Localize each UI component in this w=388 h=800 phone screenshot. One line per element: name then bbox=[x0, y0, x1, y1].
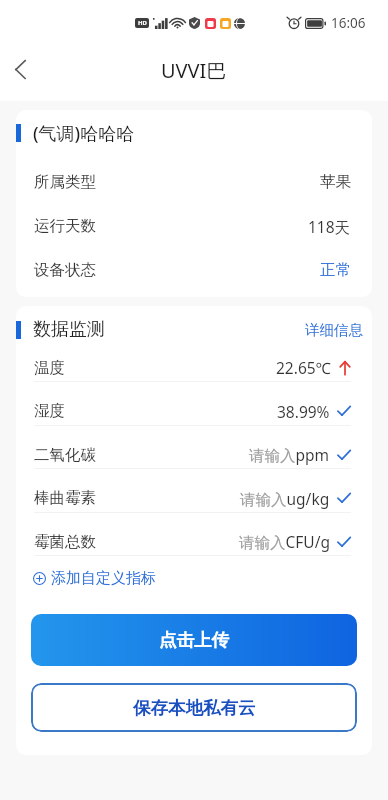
staticText: HD bbox=[138, 19, 147, 27]
staticText: 正常 bbox=[320, 260, 351, 280]
staticText: 详细信息 bbox=[305, 321, 363, 339]
staticText: 118天 bbox=[308, 216, 351, 237]
button[interactable]: 添加自定义指标 bbox=[16, 556, 372, 601]
staticText: 22.65℃ bbox=[276, 357, 332, 378]
staticText: UVVI巴 bbox=[161, 57, 227, 84]
staticText: 请输入ppm bbox=[249, 444, 330, 465]
staticText: 点击上传 bbox=[159, 629, 229, 651]
staticText: 所属类型 bbox=[34, 172, 96, 192]
button[interactable]: 二氧化碳 bbox=[16, 426, 372, 469]
staticText: 棒曲霉素 bbox=[34, 488, 96, 508]
staticText: 温度 bbox=[34, 358, 65, 378]
staticText: 请输入CFU/g bbox=[239, 531, 330, 552]
staticText: 苹果 bbox=[320, 172, 351, 192]
staticText: 16:06 bbox=[331, 14, 366, 32]
staticText: 38.99% bbox=[277, 401, 330, 422]
staticText: 数据监测 bbox=[33, 318, 105, 341]
button[interactable]: Back bbox=[0, 49, 40, 89]
staticText: 二氧化碳 bbox=[34, 445, 96, 465]
button[interactable]: 棒曲霉素 bbox=[16, 469, 372, 513]
staticText: 保存本地私有云 bbox=[133, 697, 256, 719]
button[interactable]: 霉菌总数 bbox=[16, 513, 372, 556]
staticText: 霉菌总数 bbox=[34, 532, 96, 552]
button[interactable]: 点击上传 bbox=[31, 614, 357, 666]
staticText: 请输入ug/kg bbox=[240, 488, 330, 509]
staticText: 湿度 bbox=[34, 401, 65, 421]
button[interactable]: 温度 bbox=[16, 339, 372, 382]
button[interactable]: 湿度 bbox=[16, 382, 372, 426]
button[interactable]: 详细信息 bbox=[305, 321, 363, 339]
button[interactable]: 保存本地私有云 bbox=[31, 683, 357, 732]
staticText: (气调)哈哈哈 bbox=[33, 121, 135, 146]
button[interactable]: 所属类型 bbox=[16, 160, 372, 204]
button[interactable]: 设备状态 bbox=[16, 248, 372, 292]
staticText: 添加自定义指标 bbox=[51, 569, 156, 588]
staticText: 设备状态 bbox=[34, 260, 96, 280]
button[interactable]: 运行天数 bbox=[16, 204, 372, 248]
staticText: 运行天数 bbox=[34, 216, 96, 236]
